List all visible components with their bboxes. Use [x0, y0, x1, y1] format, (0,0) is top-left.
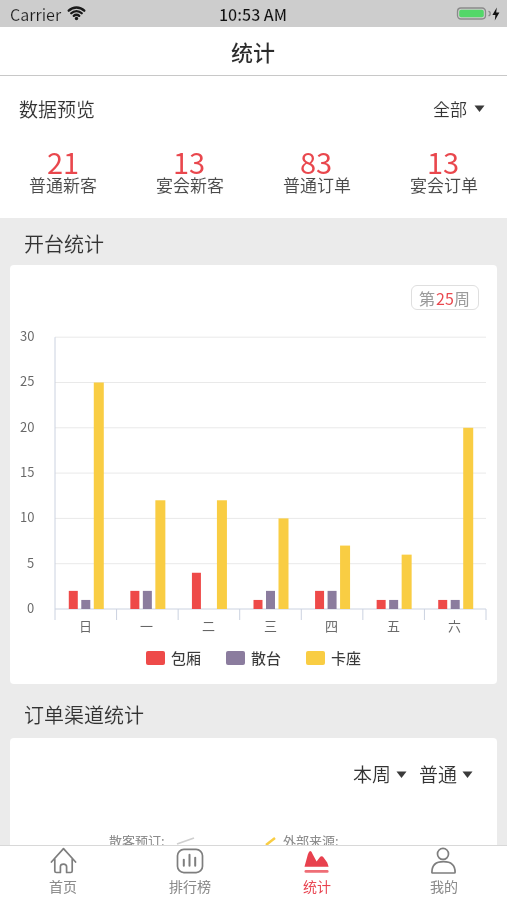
button[interactable]: 全部 — [433, 96, 485, 121]
staticText: 散客预订: — [109, 831, 165, 845]
button[interactable]: 散台 — [226, 647, 282, 669]
staticText: 普通 — [419, 760, 458, 788]
staticText: 散台 — [251, 647, 282, 669]
staticText: 5 — [27, 553, 35, 571]
staticText: 10 — [20, 507, 35, 525]
staticText: 宴会订单 — [410, 172, 478, 197]
staticText: 日 — [79, 616, 93, 635]
staticText: 15 — [20, 462, 35, 480]
staticText: 卡座 — [331, 647, 362, 669]
staticText: 普通订单 — [283, 172, 351, 197]
staticText: 三 — [264, 616, 278, 635]
staticText: 外部来源: — [283, 831, 339, 845]
staticText: 83 — [300, 140, 333, 176]
staticText: 二 — [202, 616, 216, 635]
button[interactable]: 卡座 — [306, 647, 362, 669]
staticText: 13 — [173, 140, 206, 176]
staticText: 20 — [20, 417, 35, 435]
button[interactable]: 13 — [126, 135, 253, 218]
staticText: 10:53 AM — [219, 2, 288, 25]
staticText: 开台统计 — [24, 229, 104, 258]
staticText: 25 — [20, 371, 35, 389]
button[interactable]: 本周 — [353, 760, 407, 788]
staticText: 13 — [427, 140, 460, 176]
staticText: 包厢 — [171, 647, 202, 669]
staticText: 普通新客 — [29, 172, 97, 197]
button[interactable]: 83 — [253, 135, 380, 218]
staticText: 四 — [325, 616, 339, 635]
button[interactable]: 我的 — [380, 846, 507, 900]
staticText: 宴会新客 — [156, 172, 224, 197]
staticText: 统计 — [303, 876, 331, 896]
staticText: 排行榜 — [169, 876, 211, 896]
staticText: 六 — [448, 616, 462, 635]
staticText: 0 — [27, 598, 35, 616]
button[interactable]: 第 — [411, 285, 479, 310]
button[interactable]: 排行榜 — [126, 846, 253, 900]
staticText: 一 — [140, 616, 154, 635]
staticText: 周 — [454, 286, 471, 309]
staticText: 首页 — [49, 876, 77, 896]
staticText: 数据预览 — [19, 95, 96, 123]
button[interactable]: 首页 — [0, 846, 126, 900]
staticText: 全部 — [433, 96, 467, 121]
button[interactable]: 21 — [0, 135, 126, 218]
staticText: Carrier — [10, 2, 62, 25]
staticText: 21 — [47, 140, 80, 176]
button[interactable]: 13 — [380, 135, 507, 218]
staticText: 25 — [436, 286, 454, 309]
staticText: 我的 — [430, 876, 458, 896]
button[interactable]: 普通 — [419, 760, 473, 788]
staticText: 30 — [20, 326, 35, 344]
staticText: 订单渠道统计 — [24, 700, 144, 729]
button[interactable]: 统计 — [253, 846, 380, 900]
staticText: 统计 — [231, 35, 276, 67]
staticText: 本周 — [353, 760, 392, 788]
button[interactable]: 包厢 — [146, 647, 202, 669]
staticText: 五 — [387, 616, 401, 635]
staticText: 第 — [419, 286, 436, 309]
